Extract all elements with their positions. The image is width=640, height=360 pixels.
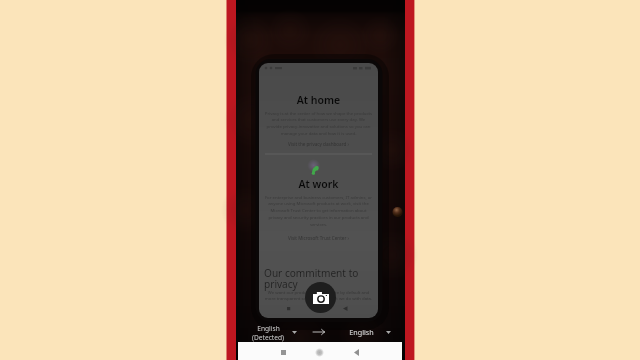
button[interactable]: Swap languages	[310, 323, 328, 341]
button[interactable]: English	[245, 324, 291, 342]
staticText: English	[257, 324, 280, 333]
staticText: Visit Microsoft Trust Center ›	[259, 235, 378, 241]
button[interactable]: Home	[311, 344, 327, 360]
staticText: Visit the privacy dashboard ›	[259, 141, 378, 147]
staticText: Privacy is at the center of how we shape…	[264, 110, 373, 136]
button[interactable]: Recent apps	[275, 344, 291, 360]
button[interactable]: Change source language	[287, 325, 301, 339]
staticText: For enterprise and business customers, I…	[262, 194, 375, 227]
staticText: We want our products to be private by de…	[264, 289, 373, 301]
button[interactable]: Capture photo	[305, 282, 336, 313]
button[interactable]: Change target language	[381, 325, 395, 339]
button[interactable]: Back	[348, 344, 364, 360]
staticText: At work	[259, 177, 378, 191]
staticText: Our commitment to privacy	[264, 266, 378, 291]
staticText: At home	[259, 93, 378, 107]
button[interactable]: English	[341, 327, 381, 337]
staticText: (Detected)	[252, 333, 284, 342]
staticText: English	[349, 327, 374, 337]
